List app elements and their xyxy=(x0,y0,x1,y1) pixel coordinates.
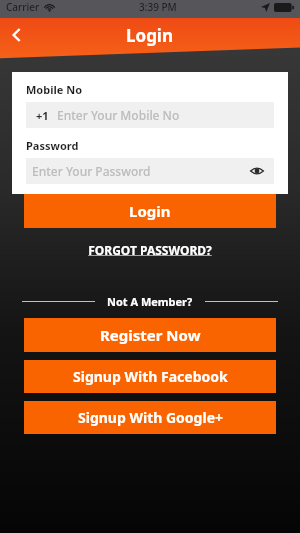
button[interactable]: Back xyxy=(0,18,34,52)
staticText: Register Now xyxy=(100,325,201,345)
staticText: Login xyxy=(126,24,174,47)
staticText: Enter Your Password xyxy=(32,163,151,179)
staticText: Password xyxy=(26,138,79,153)
button[interactable]: Signup With Facebook xyxy=(24,360,276,393)
button[interactable]: Show password xyxy=(248,162,266,180)
staticText: Carrier xyxy=(6,0,40,14)
staticText: Signup With Google+ xyxy=(78,408,223,427)
button[interactable]: Register Now xyxy=(24,318,276,352)
button[interactable]: +1 xyxy=(26,102,274,128)
staticText: Mobile No xyxy=(26,82,83,97)
button[interactable]: Signup With Google+ xyxy=(24,401,276,434)
button[interactable]: Login xyxy=(24,194,276,228)
button[interactable]: Enter Your Password xyxy=(26,158,274,184)
staticText: +1 xyxy=(36,108,49,123)
staticText: FORGOT PASSWORD? xyxy=(88,242,212,258)
staticText: Enter Your Mobile No xyxy=(57,107,180,123)
staticText: Signup With Facebook xyxy=(73,367,228,386)
staticText: Login xyxy=(129,201,171,221)
staticText: 3:39 PM xyxy=(139,0,177,14)
button[interactable]: FORGOT PASSWORD? xyxy=(0,242,300,258)
staticText: Not A Member? xyxy=(107,294,193,309)
